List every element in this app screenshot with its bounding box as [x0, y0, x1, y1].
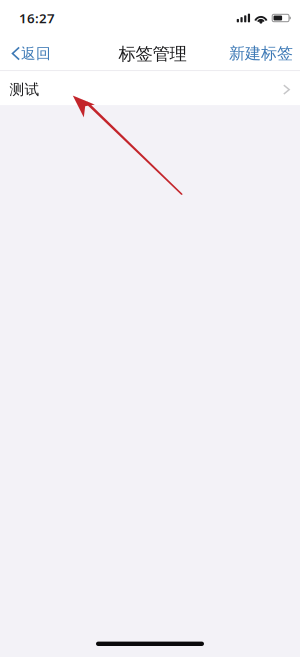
staticText: 16:27: [19, 9, 55, 27]
staticText: 测试: [9, 81, 39, 99]
button[interactable]: 返回: [0, 37, 59, 69]
staticText: 新建标签: [229, 44, 293, 63]
button[interactable]: 新建标签: [221, 37, 300, 70]
staticText: 标签管理: [118, 43, 186, 65]
button[interactable]: 测试: [0, 71, 300, 105]
staticText: 返回: [21, 44, 51, 62]
